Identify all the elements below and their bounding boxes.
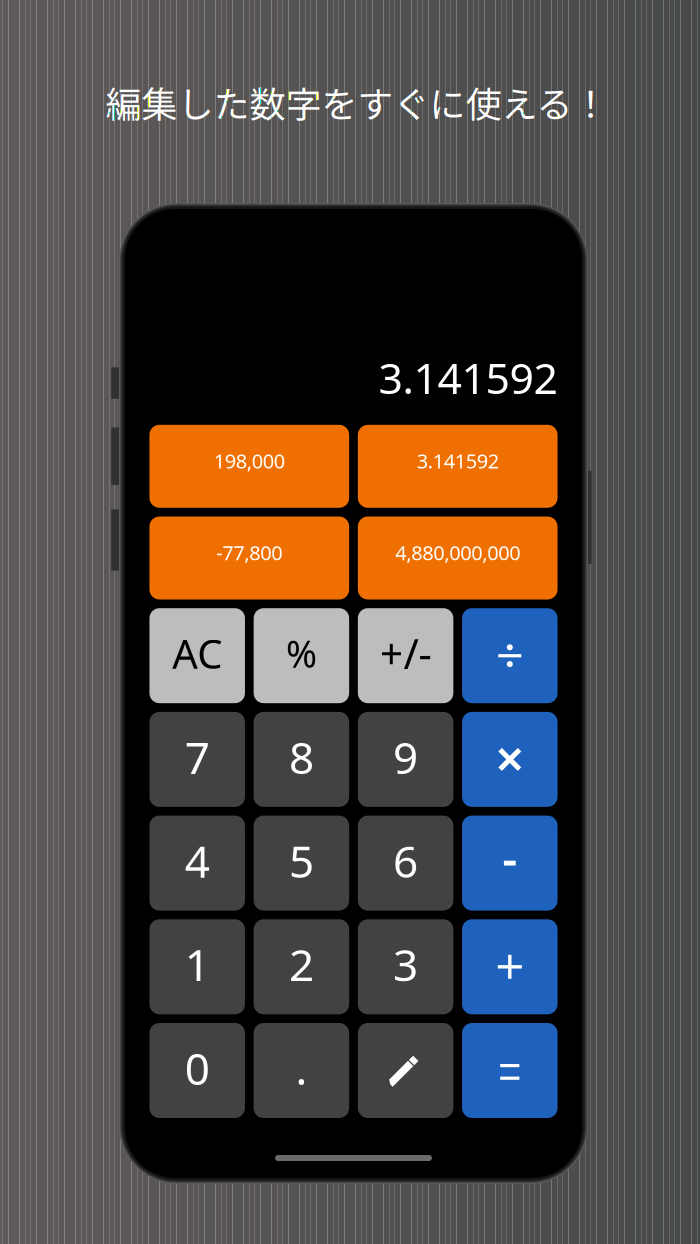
staticText: +/- — [380, 626, 432, 681]
staticText: 6 — [393, 831, 418, 890]
staticText: 7 — [185, 728, 210, 786]
staticText: 0 — [185, 1039, 210, 1097]
button[interactable]: Divide — [462, 608, 558, 703]
staticText: 5 — [289, 831, 314, 890]
button[interactable]: Edit number — [358, 1023, 453, 1118]
button[interactable]: 6 — [358, 816, 453, 911]
button[interactable]: Add — [462, 919, 558, 1014]
button[interactable]: 1 — [149, 919, 245, 1014]
button[interactable]: AC — [149, 608, 245, 703]
button[interactable]: 198,000 — [149, 425, 349, 508]
button[interactable]: 8 — [254, 712, 349, 807]
button[interactable]: 7 — [149, 712, 245, 807]
staticText: 8 — [289, 728, 314, 786]
staticText: 4,880,000,000 — [395, 539, 520, 566]
staticText: . — [295, 1039, 307, 1097]
button[interactable]: 4,880,000,000 — [358, 516, 558, 599]
button[interactable]: Subtract — [462, 816, 558, 911]
button[interactable]: 2 — [254, 919, 349, 1014]
staticText: 編集した数字をすぐに使える！ — [105, 76, 608, 128]
staticText: 3.141592 — [417, 447, 499, 474]
button[interactable]: 4 — [149, 816, 245, 911]
staticText: 4 — [185, 831, 210, 890]
button[interactable]: +/- — [358, 608, 453, 703]
button[interactable]: -77,800 — [149, 516, 349, 599]
staticText: AC — [172, 627, 222, 680]
staticText: 3 — [393, 935, 418, 993]
staticText: 1 — [185, 935, 210, 993]
button[interactable]: 3.141592 — [358, 425, 558, 508]
button[interactable]: 5 — [254, 816, 349, 911]
button[interactable]: 3 — [358, 919, 453, 1014]
button[interactable]: 0 — [149, 1023, 245, 1118]
button[interactable]: Multiply — [462, 712, 558, 807]
button[interactable]: 9 — [358, 712, 453, 807]
button[interactable]: Equals — [462, 1023, 558, 1118]
staticText: -77,800 — [216, 539, 282, 566]
staticText: 198,000 — [214, 447, 285, 474]
button[interactable]: % — [254, 608, 349, 703]
staticText: 3.141592 — [379, 349, 558, 406]
staticText: % — [286, 628, 317, 678]
staticText: 2 — [289, 935, 314, 993]
button[interactable]: . — [254, 1023, 349, 1118]
staticText: 9 — [393, 728, 418, 786]
